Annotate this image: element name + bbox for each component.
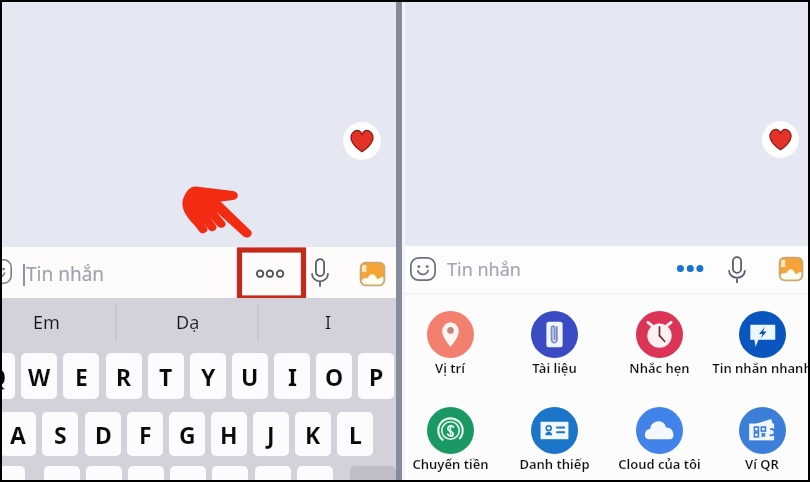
button[interactable]: More options xyxy=(671,256,715,282)
button[interactable]: I xyxy=(274,353,310,399)
button[interactable]: Em xyxy=(1,300,91,344)
button[interactable]: Shift xyxy=(0,466,25,482)
staticText: Tài liệu xyxy=(532,359,577,377)
staticText: K xyxy=(305,419,321,450)
button[interactable]: Chuyển tiền xyxy=(390,407,510,479)
button[interactable]: Danh thiếp xyxy=(494,407,614,479)
button[interactable]: J xyxy=(253,412,289,456)
button[interactable]: Nhắc hẹn xyxy=(599,311,719,383)
button[interactable]: Backspace xyxy=(350,466,396,482)
staticText: W xyxy=(28,361,51,392)
staticText: Tin nhắn xyxy=(447,257,521,282)
staticText: G xyxy=(179,419,196,450)
staticText: E xyxy=(75,361,88,392)
button[interactable]: W xyxy=(21,353,57,399)
staticText: I xyxy=(288,361,297,392)
staticText: Tin nhắn nhanh xyxy=(712,359,810,377)
button[interactable]: R xyxy=(106,353,142,399)
button[interactable]: E xyxy=(63,353,99,399)
button[interactable]: G xyxy=(169,412,205,456)
button[interactable]: Y xyxy=(190,353,226,399)
button[interactable]: P xyxy=(358,353,394,399)
staticText: M xyxy=(304,473,326,482)
staticText: Chuyển tiền xyxy=(412,455,489,473)
button[interactable]: Gallery xyxy=(779,257,803,281)
button[interactable]: L xyxy=(337,412,373,456)
staticText: Cloud của tôi xyxy=(618,455,701,473)
staticText: L xyxy=(349,419,362,450)
button[interactable]: I xyxy=(283,300,373,344)
button[interactable]: H xyxy=(211,412,247,456)
staticText: Dạ xyxy=(176,310,200,335)
staticText: F xyxy=(139,419,152,450)
button[interactable]: Z xyxy=(44,466,80,482)
staticText: C xyxy=(139,473,154,482)
button[interactable]: S xyxy=(42,412,78,456)
staticText: Q xyxy=(0,361,7,392)
button[interactable]: X xyxy=(86,466,122,482)
button[interactable]: A xyxy=(0,412,36,456)
button[interactable]: Dạ xyxy=(143,300,233,344)
staticText: R xyxy=(116,361,132,392)
button[interactable]: T xyxy=(148,353,184,399)
button[interactable]: D xyxy=(85,412,121,456)
staticText: O xyxy=(325,361,344,392)
button[interactable]: B xyxy=(212,466,248,482)
staticText: H xyxy=(220,419,238,450)
button[interactable]: Tài liệu xyxy=(494,311,614,383)
button[interactable]: Heart reaction xyxy=(762,121,799,158)
button[interactable]: Voice message xyxy=(308,258,332,288)
staticText: Ví QR xyxy=(745,455,779,473)
button[interactable]: O xyxy=(316,353,352,399)
button[interactable]: F xyxy=(127,412,163,456)
button[interactable]: Vị trí xyxy=(390,311,510,383)
staticText: V xyxy=(181,473,196,482)
staticText: Danh thiếp xyxy=(519,455,590,473)
staticText: Z xyxy=(55,473,69,482)
button[interactable]: More options xyxy=(238,248,303,299)
button[interactable]: Tin nhắn nhanh xyxy=(702,311,810,383)
staticText: Em xyxy=(33,310,60,335)
button[interactable]: Emoji xyxy=(0,259,12,284)
button[interactable]: Emoji xyxy=(410,257,436,281)
staticText: X xyxy=(96,473,112,482)
button[interactable]: V xyxy=(170,466,206,482)
staticText: Tin nhắn xyxy=(26,261,105,287)
staticText: A xyxy=(10,419,26,450)
button[interactable]: Heart reaction xyxy=(343,122,381,160)
staticText: I xyxy=(325,310,332,335)
staticText: S xyxy=(54,419,67,450)
staticText: D xyxy=(95,419,112,450)
staticText: N xyxy=(264,473,283,482)
button[interactable]: C xyxy=(128,466,164,482)
staticText: Y xyxy=(201,361,216,392)
button[interactable]: Ví QR xyxy=(702,407,810,479)
staticText: B xyxy=(222,473,238,482)
staticText: J xyxy=(267,419,275,450)
button[interactable]: Voice message xyxy=(725,256,749,284)
staticText: P xyxy=(369,361,384,392)
staticText: T xyxy=(159,361,173,392)
staticText: Nhắc hẹn xyxy=(629,359,690,377)
staticText: Vị trí xyxy=(435,359,465,377)
staticText: U xyxy=(241,361,259,392)
button[interactable]: U xyxy=(232,353,268,399)
button[interactable]: Gallery xyxy=(360,262,385,286)
button[interactable]: Q xyxy=(0,353,15,399)
button[interactable]: Cloud của tôi xyxy=(599,407,719,479)
button[interactable]: N xyxy=(255,466,291,482)
button[interactable]: M xyxy=(297,466,333,482)
button[interactable]: K xyxy=(295,412,331,456)
